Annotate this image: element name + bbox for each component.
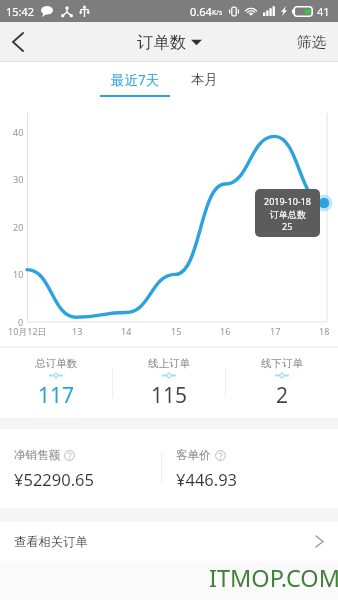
staticText: ¥52290.65 xyxy=(14,468,94,490)
staticText: 117 xyxy=(38,381,75,410)
staticText: 13 xyxy=(72,325,83,337)
staticText: 订单总数 xyxy=(270,209,306,220)
staticText: 41 xyxy=(317,4,330,19)
staticText: 115 xyxy=(151,381,188,410)
staticText: 线下订单 xyxy=(261,357,303,370)
staticText: 10月12日 xyxy=(8,325,47,337)
staticText: 40 xyxy=(13,126,24,138)
button[interactable]: 订单数 xyxy=(137,32,202,53)
button[interactable]: 最近7天 xyxy=(100,62,170,100)
staticText: 本月 xyxy=(191,71,218,88)
staticText: 18 xyxy=(319,325,330,337)
button[interactable]: 净销售额 xyxy=(14,429,94,490)
staticText: 15:42 xyxy=(6,4,35,19)
staticText: 筛选 xyxy=(297,33,327,51)
staticText: 订单数 xyxy=(137,32,187,53)
staticText: 2 xyxy=(276,381,289,410)
staticText: 线上订单 xyxy=(148,357,190,370)
staticText: 总订单数 xyxy=(35,357,77,370)
button[interactable]: 客单价 xyxy=(176,429,238,490)
staticText: 查看相关订单 xyxy=(14,534,88,549)
button[interactable]: 筛选 xyxy=(286,33,338,51)
staticText: 15 xyxy=(171,325,182,337)
staticText: 10 xyxy=(13,268,24,280)
staticText: 30 xyxy=(13,173,24,185)
staticText: 17 xyxy=(270,325,281,337)
staticText: 16 xyxy=(220,325,231,337)
staticText: 25 xyxy=(282,220,293,232)
staticText: 客单价 xyxy=(176,448,211,462)
staticText: 0.64 xyxy=(190,4,212,19)
staticText: 14 xyxy=(121,325,132,337)
button[interactable]: 查看相关订单 xyxy=(0,522,338,561)
button[interactable]: Back xyxy=(0,22,35,62)
staticText: 净销售额 xyxy=(14,448,60,462)
button[interactable]: 线上订单 xyxy=(113,357,225,410)
staticText: 最近7天 xyxy=(111,71,160,89)
button[interactable]: 本月 xyxy=(174,62,234,100)
staticText: 0 xyxy=(18,316,24,328)
button[interactable]: 总订单数 xyxy=(0,357,112,410)
staticText: ITMOP.COM xyxy=(209,562,338,594)
staticText: 2019-10-18 xyxy=(264,195,311,207)
staticText: K/s xyxy=(212,8,223,18)
button[interactable]: 线下订单 xyxy=(226,357,338,410)
staticText: ¥446.93 xyxy=(176,468,238,490)
staticText: 20 xyxy=(13,221,24,233)
